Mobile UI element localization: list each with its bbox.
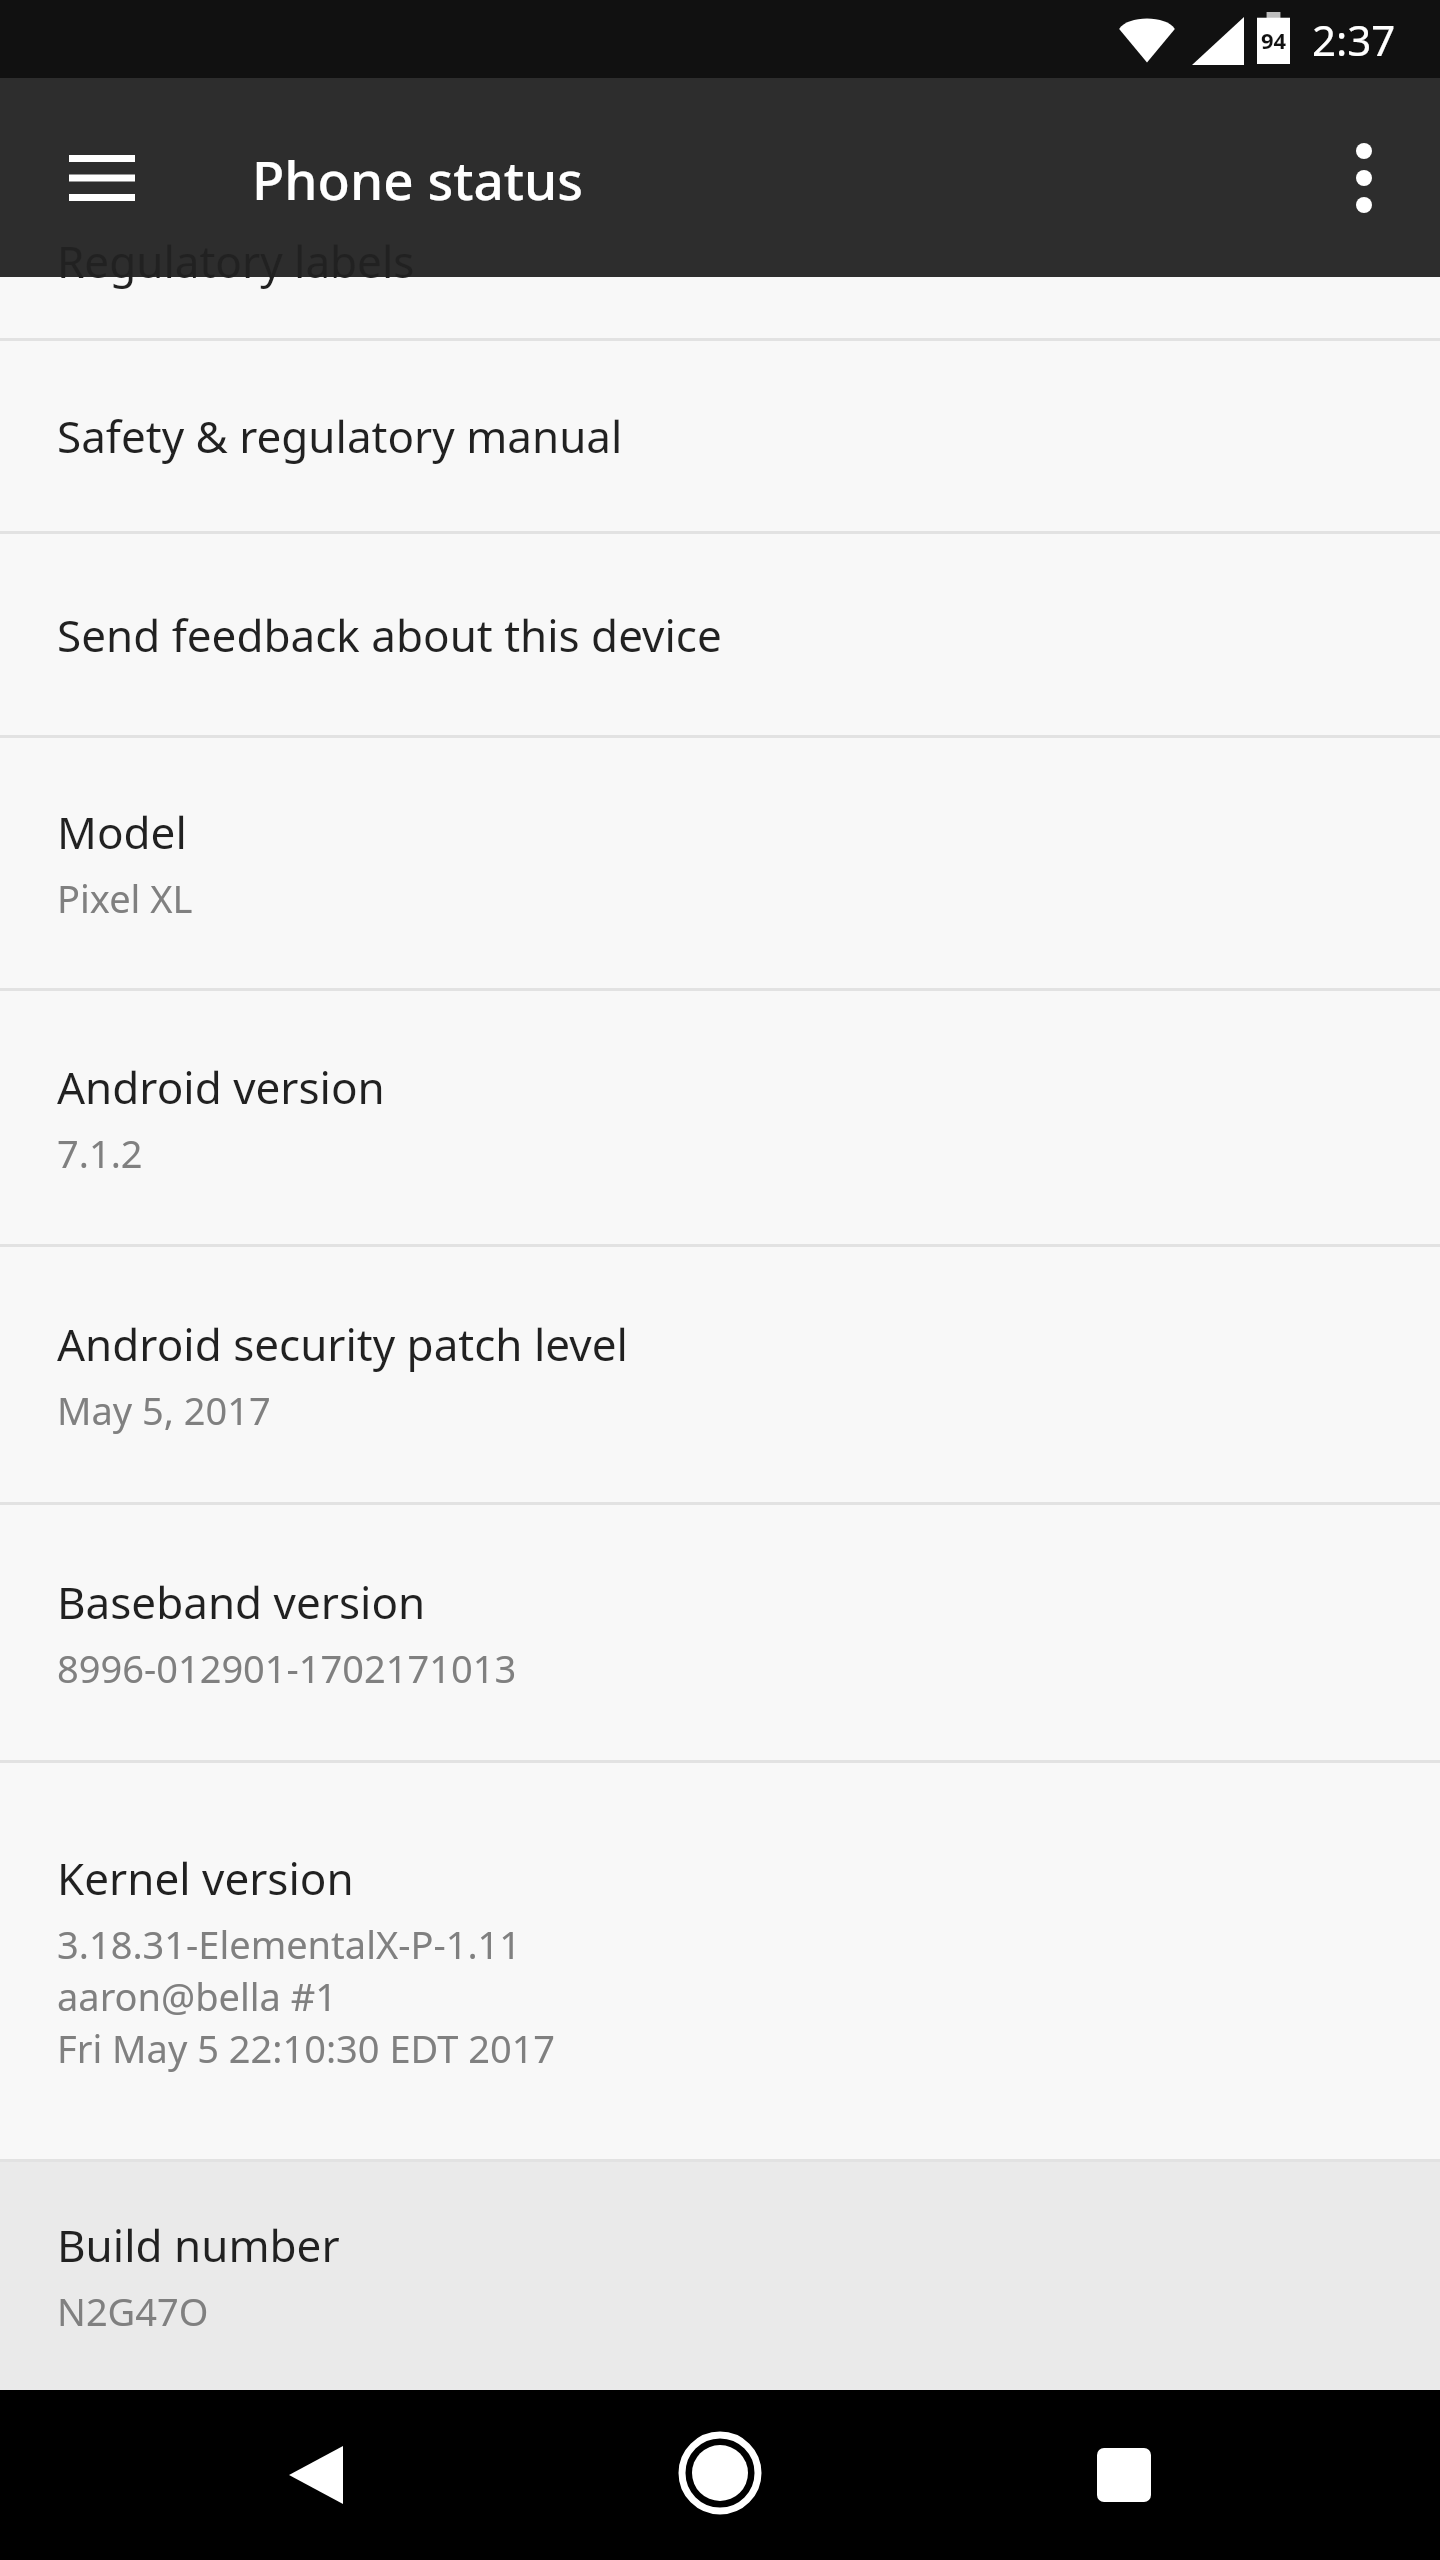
staticText: Android version xyxy=(57,1057,385,1117)
staticText: May 5, 2017 xyxy=(57,1384,271,1436)
button[interactable]: Recent apps xyxy=(1034,2390,1214,2560)
staticText: 94 xyxy=(1261,25,1287,55)
staticText: N2G47O xyxy=(57,2285,209,2337)
button[interactable]: Send feedback about this device xyxy=(0,534,1440,735)
button[interactable]: Home xyxy=(630,2388,810,2558)
button[interactable]: Back xyxy=(226,2390,406,2560)
staticText: Fri May 5 22:10:30 EDT 2017 xyxy=(57,2022,556,2074)
staticText: Android security patch level xyxy=(57,1314,628,1374)
staticText: Kernel version xyxy=(57,1848,354,1908)
staticText: Model xyxy=(57,802,187,862)
button[interactable]: Open navigation menu xyxy=(30,106,174,250)
staticText: Regulatory labels xyxy=(57,231,415,291)
staticText: Safety & regulatory manual xyxy=(57,406,623,466)
button[interactable]: Safety & regulatory manual xyxy=(0,341,1440,531)
button[interactable]: Regulatory labels xyxy=(0,277,1440,338)
staticText: Pixel XL xyxy=(57,872,193,924)
button[interactable]: Android version xyxy=(0,991,1440,1244)
button[interactable]: Kernel version xyxy=(0,1763,1440,2159)
staticText: 7.1.2 xyxy=(57,1127,143,1179)
staticText: aaron@bella #1 xyxy=(57,1970,338,2022)
button[interactable]: Build number xyxy=(0,2162,1440,2390)
button[interactable]: Baseband version xyxy=(0,1505,1440,1760)
button[interactable]: More options xyxy=(1294,108,1434,248)
staticText: Phone status xyxy=(252,143,584,215)
staticText: 3.18.31-ElementalX-P-1.11 xyxy=(57,1918,522,1970)
button[interactable]: Model xyxy=(0,738,1440,988)
staticText: Build number xyxy=(57,2215,340,2275)
staticText: 2:37 xyxy=(1312,11,1396,68)
button[interactable]: Android security patch level xyxy=(0,1247,1440,1502)
staticText: Send feedback about this device xyxy=(57,605,722,665)
staticText: 8996-012901-1702171013 xyxy=(57,1642,517,1694)
staticText: Baseband version xyxy=(57,1572,426,1632)
